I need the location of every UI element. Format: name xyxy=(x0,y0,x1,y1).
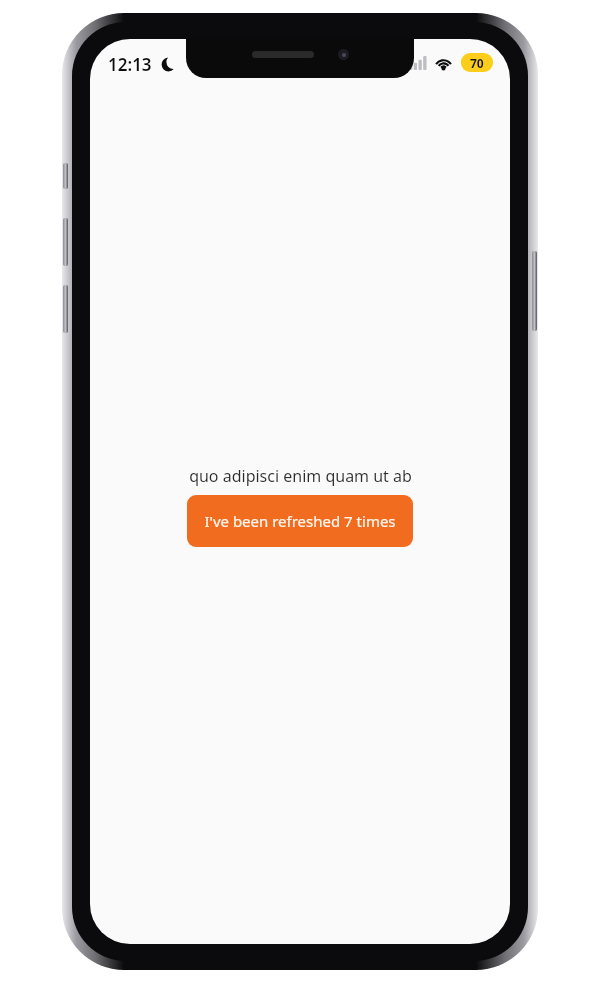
staticText: 12:13 xyxy=(108,53,152,76)
staticText: I've been refreshed 7 times xyxy=(204,511,396,531)
staticText: 70 xyxy=(470,55,484,71)
staticText: quo adipisci enim quam ut ab xyxy=(189,465,412,487)
button[interactable]: I've been refreshed 7 times xyxy=(187,495,413,547)
